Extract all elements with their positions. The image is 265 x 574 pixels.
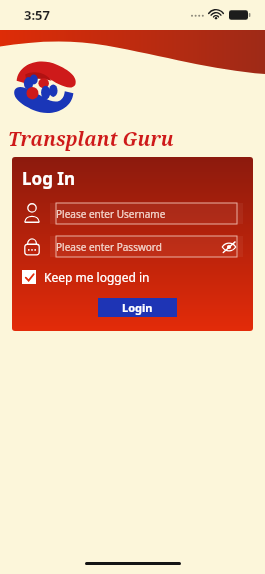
button[interactable]: Please enter Password	[50, 236, 243, 257]
button[interactable]: Login	[98, 298, 177, 317]
staticText: Login	[122, 300, 153, 315]
staticText: Please enter Username	[56, 207, 166, 221]
button[interactable]: Show password	[221, 239, 237, 255]
button[interactable]: Keep me logged in	[22, 268, 150, 286]
staticText: Log In	[22, 167, 75, 190]
button[interactable]: Please enter Username	[50, 203, 243, 224]
staticText: Transplant Guru	[8, 126, 174, 152]
staticText: Please enter Password	[56, 240, 162, 254]
staticText: Keep me logged in	[44, 269, 150, 285]
staticText: 3:57	[24, 6, 50, 24]
